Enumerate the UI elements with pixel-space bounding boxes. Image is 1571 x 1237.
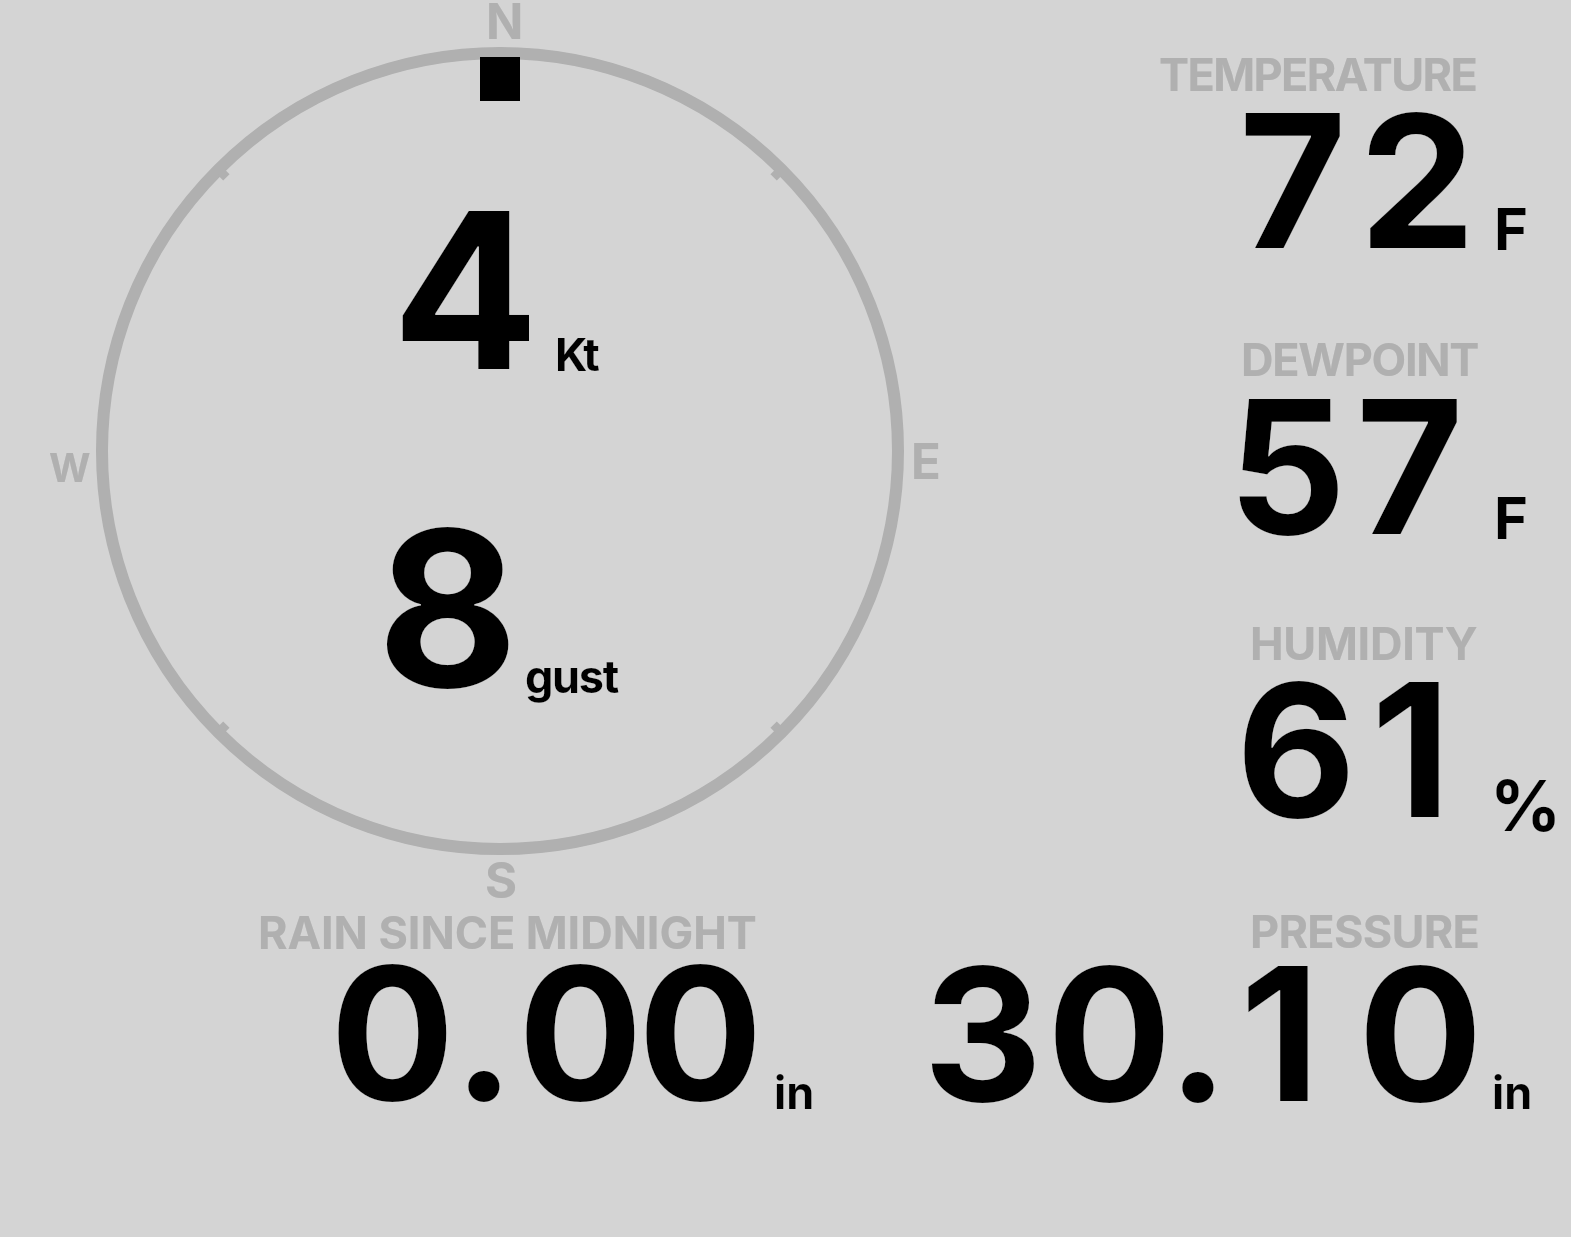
staticText: 7	[1356, 355, 1464, 579]
staticText: 2	[1359, 69, 1476, 293]
staticText: Kt	[555, 327, 596, 381]
staticText: .	[453, 921, 515, 1145]
staticText: 6	[1236, 638, 1357, 862]
staticText: 5	[1228, 355, 1347, 579]
button[interactable]: Humidity 61 percent	[1140, 610, 1560, 845]
staticText: RAIN SINCE MIDNIGHT	[258, 905, 757, 959]
staticText: 0	[638, 921, 763, 1145]
staticText: gust	[525, 649, 618, 703]
staticText: 1	[1240, 922, 1320, 1146]
staticText: 0	[1047, 922, 1172, 1146]
staticText: %	[1490, 763, 1562, 848]
button[interactable]: Pressure 30.10 in	[900, 900, 1560, 1130]
staticText: 4	[392, 159, 539, 422]
staticText: in	[774, 1065, 815, 1119]
staticText: S	[485, 851, 518, 910]
staticText: 0	[1358, 922, 1483, 1146]
staticText: 1	[1371, 638, 1451, 862]
staticText: 7	[1239, 69, 1347, 293]
staticText: 0	[330, 921, 455, 1145]
button[interactable]: Temperature 72 F	[1140, 40, 1560, 270]
staticText: .	[1167, 922, 1229, 1146]
staticText: F	[1494, 483, 1529, 553]
staticText: HUMIDITY	[1250, 616, 1478, 670]
staticText: DEWPOINT	[1241, 332, 1479, 386]
staticText: 8	[377, 477, 519, 740]
button[interactable]: Rain since midnight 0.00 in	[240, 900, 840, 1130]
staticText: N	[486, 0, 524, 51]
staticText: E	[911, 432, 941, 491]
staticText: 0	[518, 921, 643, 1145]
staticText: in	[1492, 1065, 1533, 1119]
button[interactable]: Wind speed 4 knots, gusting 8, direction…	[90, 40, 920, 870]
staticText: PRESSURE	[1250, 904, 1480, 958]
staticText: 3	[923, 922, 1043, 1146]
staticText: F	[1494, 194, 1529, 264]
staticText: W	[49, 443, 91, 491]
staticText: TEMPERATURE	[1159, 47, 1477, 101]
button[interactable]: Dewpoint 57 F	[1140, 330, 1560, 560]
